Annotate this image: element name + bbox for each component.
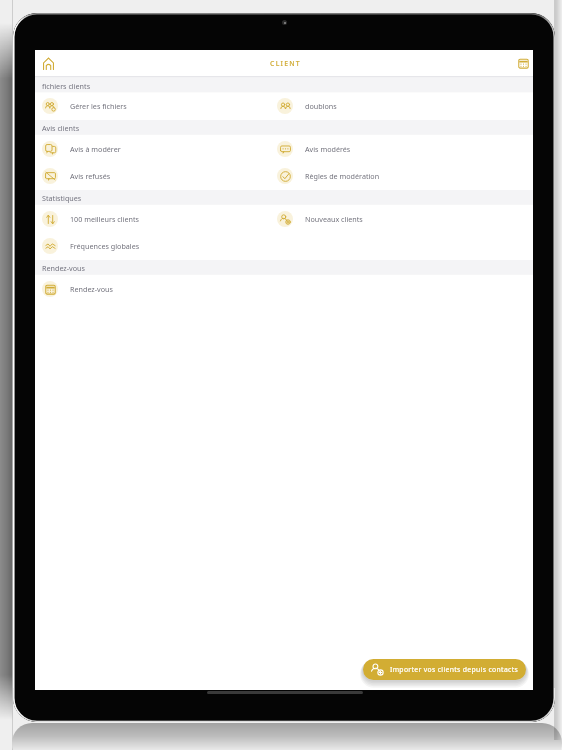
button[interactable]: Gérer les fichiers <box>35 92 270 120</box>
staticText: Nouveaux clients <box>305 214 363 224</box>
button[interactable]: Avis modérés <box>270 135 505 163</box>
button[interactable]: Fréquences globales <box>35 232 270 260</box>
button[interactable]: Avis à modérer <box>35 135 270 163</box>
staticText: Statistiques <box>42 193 82 203</box>
button[interactable]: Importer vos clients depuis contacts <box>363 659 526 680</box>
staticText: Rendez-vous <box>42 263 85 273</box>
staticText: 100 meilleurs clients <box>70 214 140 224</box>
staticText: Avis refusés <box>70 171 111 181</box>
button[interactable]: Calendar <box>513 53 533 73</box>
staticText: Gérer les fichiers <box>70 101 127 111</box>
staticText: Fréquences globales <box>70 241 140 251</box>
button[interactable]: Rendez-vous <box>35 275 270 303</box>
staticText: fichiers clients <box>42 81 91 91</box>
staticText: CLIENT <box>270 59 301 68</box>
staticText: Avis à modérer <box>70 144 121 154</box>
staticText: Règles de modération <box>305 171 380 181</box>
staticText: doublons <box>305 101 337 111</box>
staticText: Avis modérés <box>305 144 351 154</box>
button[interactable]: doublons <box>270 92 505 120</box>
button[interactable]: Avis refusés <box>35 162 270 190</box>
button[interactable]: 100 meilleurs clients <box>35 205 270 233</box>
button[interactable]: Home <box>38 53 59 74</box>
button[interactable]: Règles de modération <box>270 162 505 190</box>
staticText: Avis clients <box>42 123 80 133</box>
staticText: Rendez-vous <box>70 284 113 294</box>
button[interactable]: Nouveaux clients <box>270 205 505 233</box>
staticText: Importer vos clients depuis contacts <box>390 665 518 674</box>
